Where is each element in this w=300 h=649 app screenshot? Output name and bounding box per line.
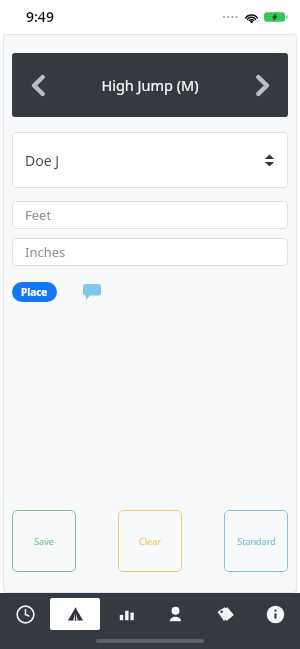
button[interactable]: Feet	[12, 201, 288, 229]
button[interactable]: Schedule	[0, 593, 50, 635]
button[interactable]: Add comment	[81, 281, 103, 303]
button[interactable]: Athletes	[150, 593, 200, 635]
button[interactable]: Save	[12, 510, 76, 572]
button[interactable]: Results	[100, 593, 150, 635]
staticText: Standard	[237, 535, 276, 547]
button[interactable]: Info	[250, 593, 300, 635]
staticText: 9:49	[26, 7, 54, 26]
button[interactable]: Inches	[12, 238, 288, 266]
button[interactable]: Next event	[236, 53, 288, 117]
button[interactable]: Doe J	[12, 132, 288, 188]
staticText: Inches	[25, 243, 66, 261]
staticText: Doe J	[25, 151, 60, 170]
button[interactable]: Tags	[200, 593, 250, 635]
button[interactable]: Standard	[224, 510, 288, 572]
staticText: Clear	[139, 535, 161, 547]
staticText: High Jump (M)	[101, 75, 199, 95]
staticText: Feet	[25, 206, 52, 224]
button[interactable]: Clear	[118, 510, 182, 572]
button[interactable]: Place	[12, 282, 57, 302]
staticText: Place	[21, 285, 48, 299]
button[interactable]: Previous event	[12, 53, 64, 117]
button[interactable]: Events	[50, 593, 100, 635]
staticText: Save	[34, 535, 54, 547]
